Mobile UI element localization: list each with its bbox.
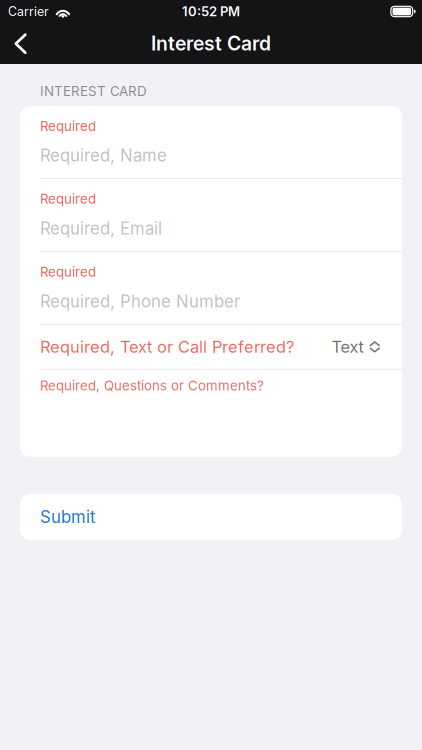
button[interactable]: Required: [20, 179, 402, 251]
staticText: INTEREST CARD: [40, 83, 147, 99]
staticText: Required, Email: [40, 218, 162, 238]
staticText: 10:52 PM: [182, 4, 240, 19]
staticText: Required, Phone Number: [40, 291, 240, 311]
staticText: Carrier: [8, 4, 49, 19]
staticText: Required, Text or Call Preferred?: [40, 337, 294, 357]
staticText: Required, Questions or Comments?: [40, 378, 264, 394]
button[interactable]: Required: [20, 106, 402, 178]
button[interactable]: Back: [0, 24, 41, 62]
staticText: Required: [40, 118, 96, 134]
staticText: Text: [331, 337, 363, 357]
staticText: Required: [40, 264, 96, 280]
staticText: Required, Name: [40, 145, 167, 166]
button[interactable]: Submit: [20, 494, 402, 540]
staticText: Interest Card: [151, 32, 271, 55]
staticText: Submit: [40, 507, 95, 527]
button[interactable]: Required, Text or Call Preferred?: [20, 325, 402, 369]
button[interactable]: Required: [20, 252, 402, 324]
staticText: Required: [40, 191, 96, 207]
